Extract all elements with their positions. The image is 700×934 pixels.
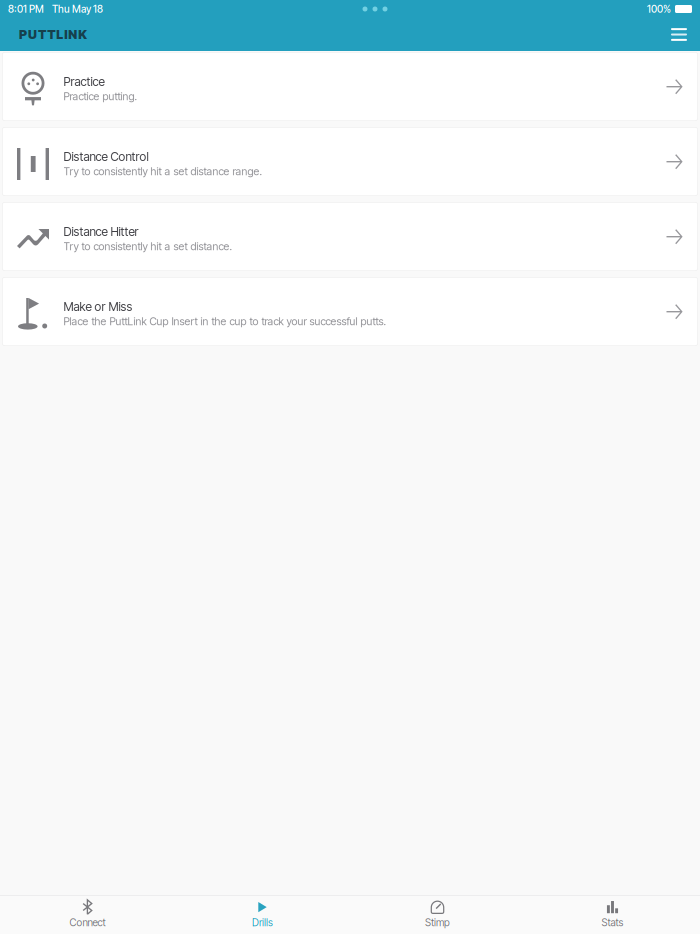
staticText: 100% — [647, 3, 671, 15]
staticText: Try to consistently hit a set distance r… — [63, 165, 262, 178]
staticText: 8:01 PM — [8, 3, 44, 15]
staticText: Practice — [63, 74, 104, 89]
staticText: Drills — [252, 916, 273, 929]
button[interactable]: Distance Control — [2, 127, 698, 196]
staticText: Practice putting. — [63, 90, 137, 103]
staticText: Place the PuttLink Cup Insert in the cup… — [63, 315, 386, 328]
button[interactable]: Practice — [2, 52, 698, 121]
button[interactable]: Make or Miss — [2, 277, 698, 346]
staticText: Stats — [601, 916, 623, 929]
staticText: Connect — [69, 916, 105, 929]
button[interactable]: Menu — [665, 20, 693, 48]
staticText: Thu May 18 — [52, 3, 103, 15]
staticText: Distance Hitter — [63, 224, 138, 239]
button[interactable]: Stats — [525, 895, 700, 934]
staticText: Stimp — [425, 916, 450, 929]
staticText: Make or Miss — [63, 299, 132, 314]
button[interactable]: Stimp — [350, 895, 525, 934]
staticText: Try to consistently hit a set distance. — [63, 240, 232, 253]
button[interactable]: Drills — [175, 895, 350, 934]
button[interactable]: Distance Hitter — [2, 202, 698, 271]
staticText: Distance Control — [63, 149, 148, 164]
staticText: PUTTLINK — [19, 27, 90, 42]
button[interactable]: Connect — [0, 895, 175, 934]
